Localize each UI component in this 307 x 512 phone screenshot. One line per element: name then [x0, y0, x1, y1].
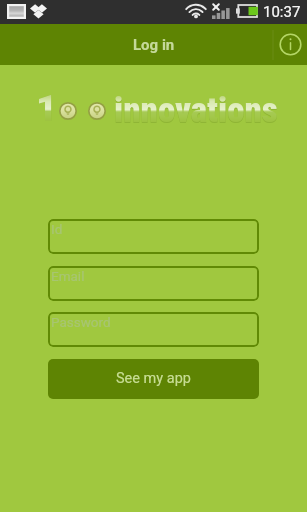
button[interactable]: Id	[48, 219, 259, 254]
staticText: See my app	[116, 370, 191, 387]
staticText: Password	[51, 314, 111, 330]
button[interactable]: Password	[48, 312, 259, 347]
staticText: Email	[51, 268, 85, 284]
button[interactable]: Email	[48, 266, 259, 301]
staticText: 1	[36, 87, 58, 121]
button[interactable]: Information	[274, 24, 307, 65]
staticText: Log in	[133, 36, 175, 54]
staticText: innovations	[114, 90, 278, 124]
staticText: Id	[51, 221, 63, 237]
staticText: innovations	[114, 91, 278, 125]
staticText: 10:37	[263, 3, 301, 21]
button[interactable]: See my app	[48, 359, 259, 399]
staticText: 1	[36, 87, 58, 121]
